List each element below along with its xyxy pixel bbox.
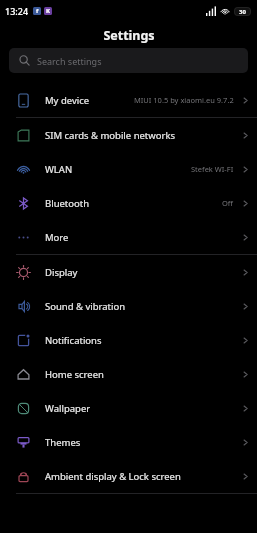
staticText: WLAN — [45, 163, 73, 176]
staticText: Settings — [103, 27, 155, 44]
staticText: f — [36, 7, 39, 15]
staticText: More — [45, 231, 69, 244]
staticText: 30 — [239, 8, 246, 16]
staticText: Ambient display & Lock screen — [45, 470, 181, 483]
staticText: 13:24 — [5, 5, 29, 17]
button[interactable]: More — [0, 220, 257, 254]
staticText: Stefek WI-FI — [191, 164, 234, 174]
button[interactable]: Themes — [0, 425, 257, 459]
button[interactable]: WLAN — [0, 152, 257, 186]
staticText: Wallpaper — [45, 402, 91, 415]
button[interactable]: Wallpaper — [0, 391, 257, 425]
button[interactable]: Display — [0, 255, 257, 289]
staticText: MIUI 10.5 by xiaomi.eu 9.7.2 — [134, 95, 234, 105]
button[interactable]: My device — [0, 83, 257, 117]
button[interactable]: Ambient display & Lock screen — [0, 459, 257, 493]
staticText: Bluetooth — [45, 197, 90, 210]
staticText: K — [46, 7, 50, 15]
button[interactable]: Sound & vibration — [0, 289, 257, 323]
button[interactable]: SIM cards & mobile networks — [0, 118, 257, 152]
button[interactable]: Home screen — [0, 357, 257, 391]
staticText: Home screen — [45, 368, 104, 381]
button[interactable]: Search settings — [9, 48, 248, 73]
staticText: Search settings — [37, 55, 102, 67]
button[interactable]: Notifications — [0, 323, 257, 357]
staticText: My device — [45, 94, 90, 107]
staticText: Notifications — [45, 334, 102, 347]
staticText: Sound & vibration — [45, 300, 126, 313]
staticText: Themes — [45, 436, 81, 449]
staticText: Off — [222, 198, 234, 208]
staticText: SIM cards & mobile networks — [45, 129, 176, 142]
staticText: Display — [45, 266, 78, 279]
button[interactable]: Bluetooth — [0, 186, 257, 220]
